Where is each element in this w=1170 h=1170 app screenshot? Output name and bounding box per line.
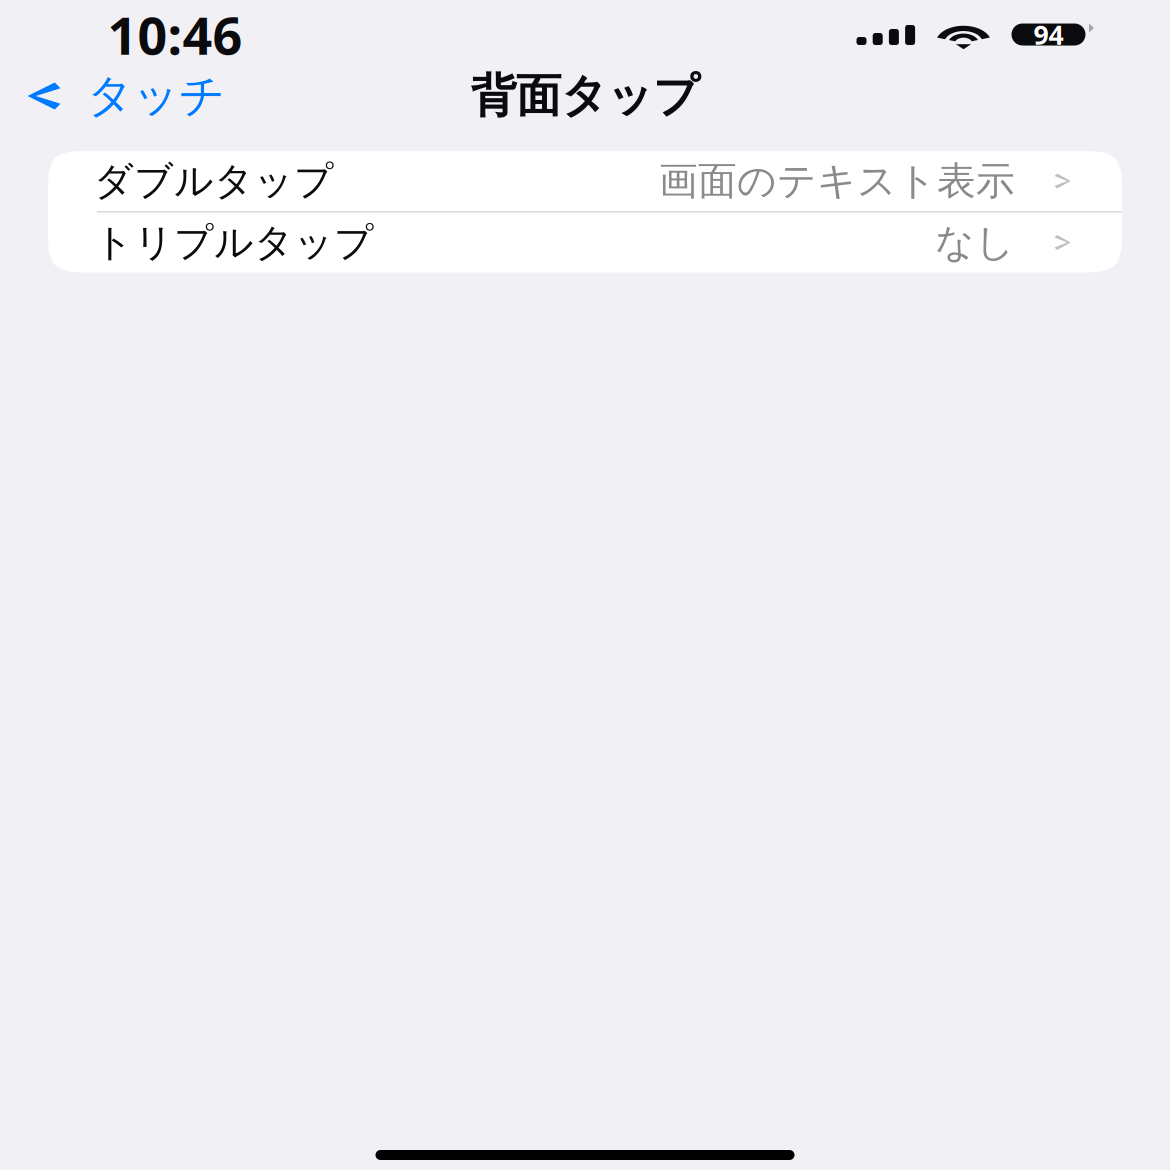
staticText: 94 [1033,17,1063,52]
staticText: 10:46 [107,0,242,69]
staticText: トリプルタップ [94,219,374,266]
button[interactable]: タッチ [0,64,243,128]
staticText: なし [935,219,1015,266]
button[interactable]: トリプルタップ, なし [48,212,1122,272]
button[interactable]: ダブルタップ, 画面のテキスト表示 [48,151,1122,211]
staticText: 画面のテキスト表示 [659,157,1015,205]
staticText: タッチ [87,68,225,124]
staticText: ダブルタップ [94,157,334,205]
staticText: 背面タップ [471,68,699,124]
